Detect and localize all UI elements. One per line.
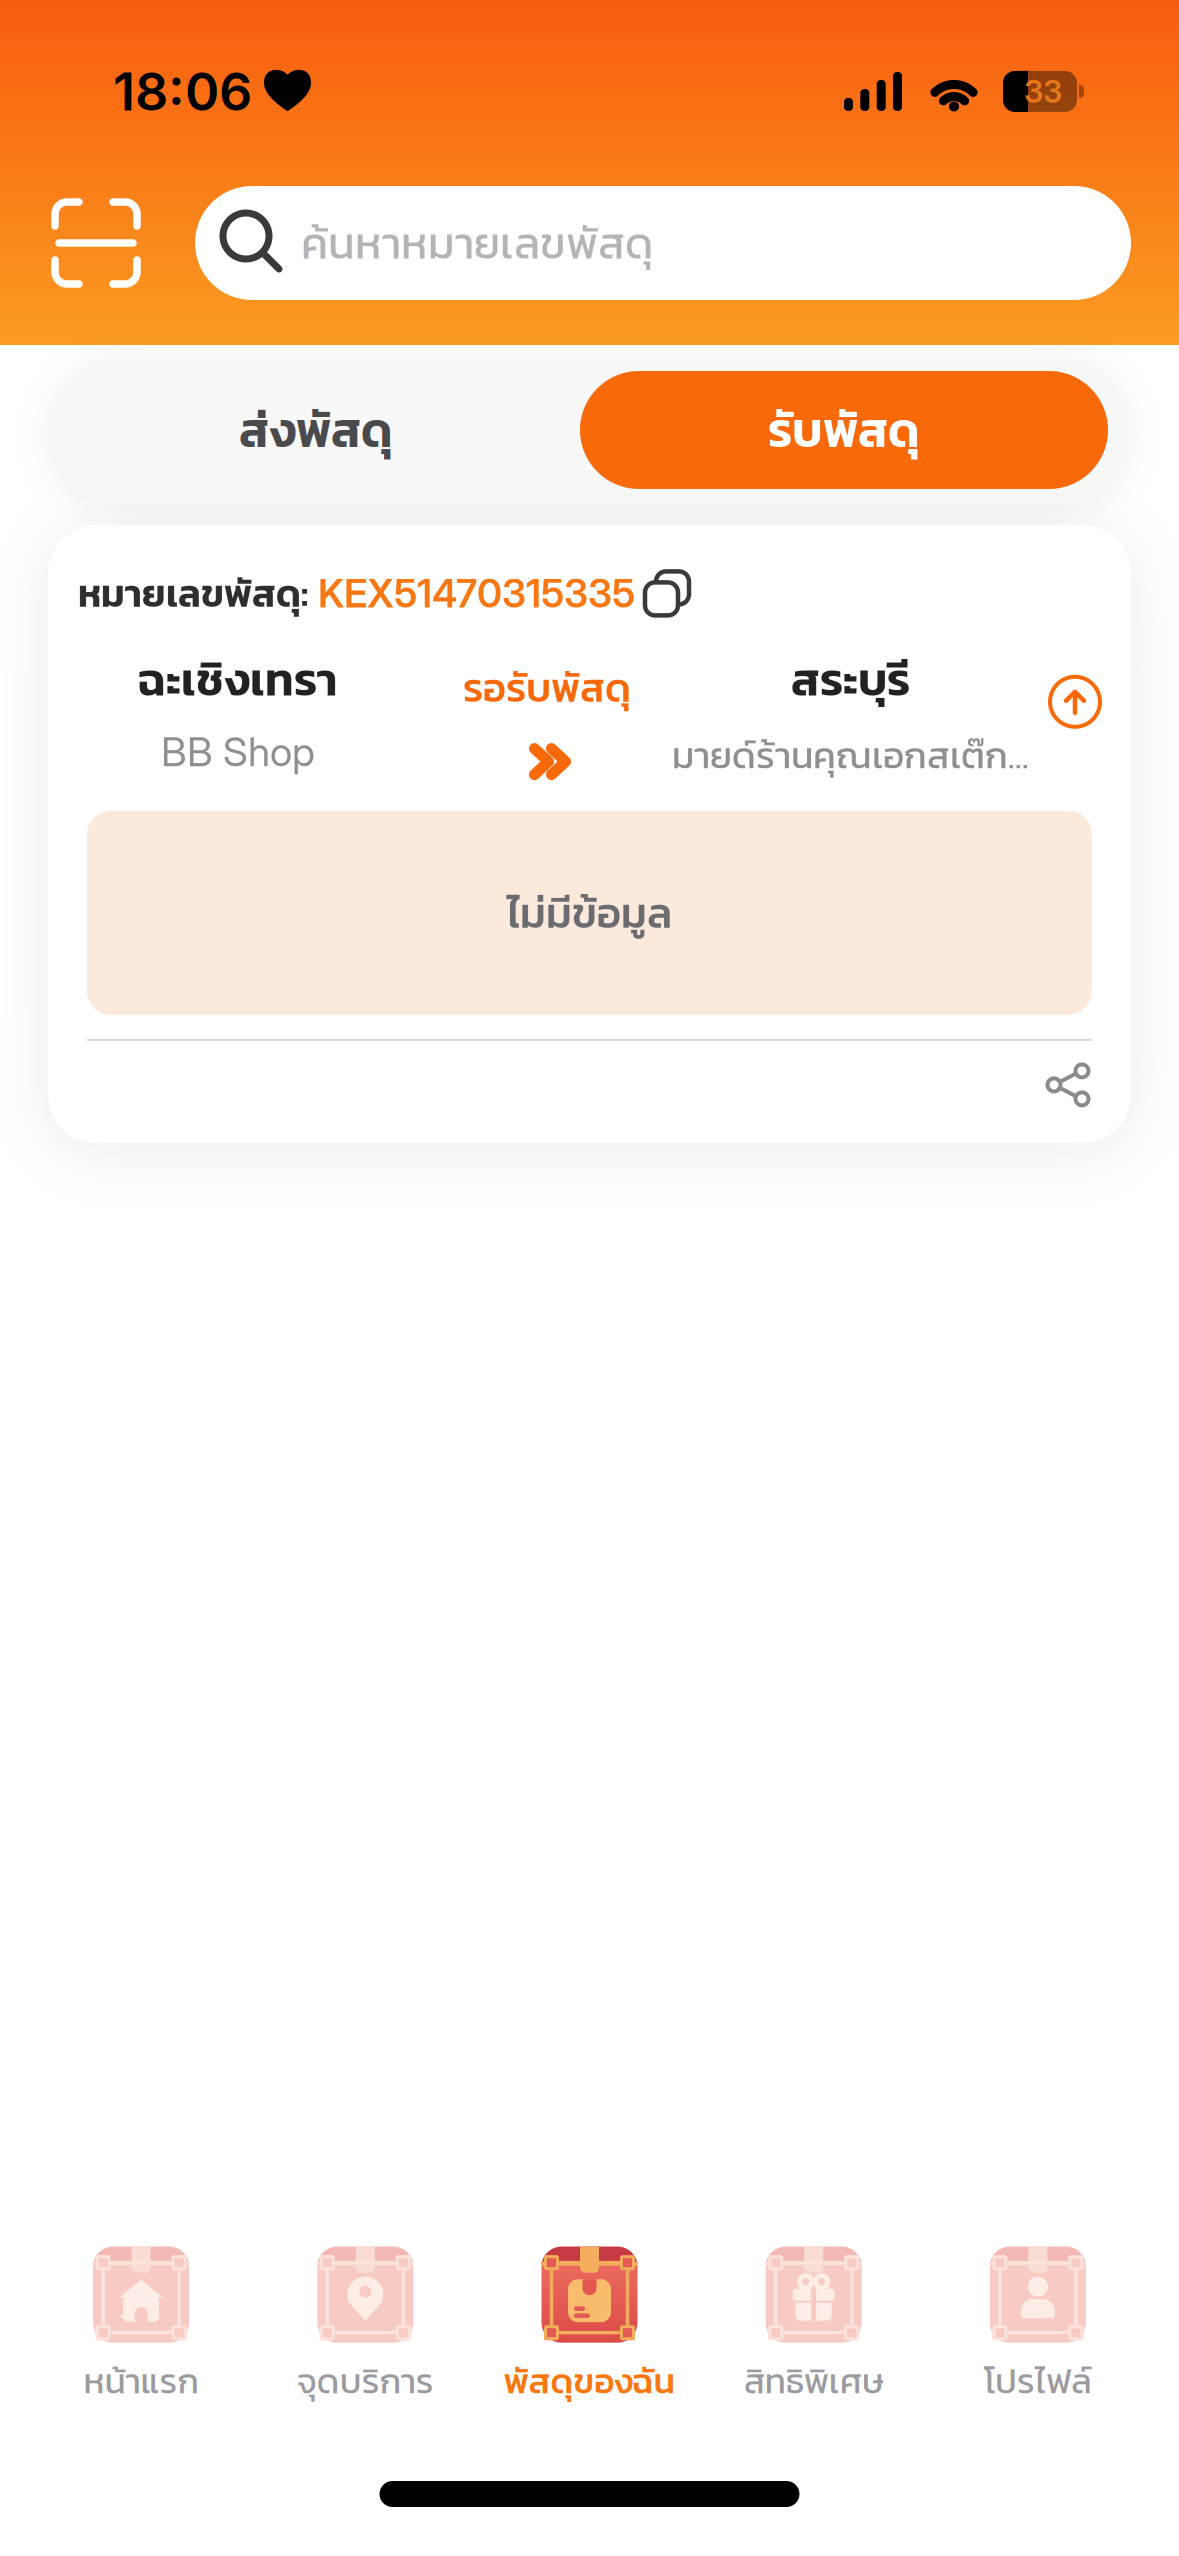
staticText: รับพัสดุ xyxy=(768,394,920,466)
button[interactable]: ส่งพัสดุ xyxy=(52,371,580,489)
button[interactable]: สิทธิพิเศษ xyxy=(702,2247,926,2407)
staticText: BB Shop xyxy=(161,728,315,776)
button[interactable]: Scan parcel xyxy=(0,202,137,284)
button[interactable]: Share xyxy=(1047,1063,1091,1107)
staticText: จุดบริการ xyxy=(297,2355,434,2407)
staticText: หมายเลขพัสดุ: xyxy=(78,565,308,622)
staticText: ค้นหาหมายเลขพัสดุ xyxy=(301,210,653,276)
button[interactable]: Copy tracking number xyxy=(635,569,691,617)
staticText: ฉะเชิงเทรา xyxy=(138,645,338,714)
button[interactable]: โปรไฟล์ xyxy=(926,2247,1150,2407)
staticText: พัสดุของฉัน xyxy=(503,2355,675,2407)
staticText: สิทธิพิเศษ xyxy=(744,2355,884,2407)
button[interactable]: จุดบริการ xyxy=(253,2247,477,2407)
button[interactable]: พัสดุของฉัน xyxy=(477,2247,702,2407)
staticText: โปรไฟล์ xyxy=(984,2355,1092,2407)
staticText: ส่งพัสดุ xyxy=(239,394,393,466)
staticText: KEX51470315335 xyxy=(318,570,635,617)
staticText: หน้าแรก xyxy=(84,2355,199,2407)
staticText: มายด์ร้านคุณเอกสเต๊ก... xyxy=(672,728,1029,783)
staticText: รอรับพัสดุ xyxy=(463,658,631,718)
staticText: 33 xyxy=(1024,73,1062,110)
button[interactable]: รับพัสดุ xyxy=(580,371,1108,489)
button[interactable]: หน้าแรก xyxy=(29,2247,253,2407)
staticText: 18:06 xyxy=(113,60,252,123)
button[interactable]: Expand xyxy=(1048,645,1102,729)
staticText: สระบุรี xyxy=(791,645,910,714)
staticText: ไม่มีข้อมูล xyxy=(507,881,672,944)
button[interactable]: Search tracking number xyxy=(137,186,1179,300)
